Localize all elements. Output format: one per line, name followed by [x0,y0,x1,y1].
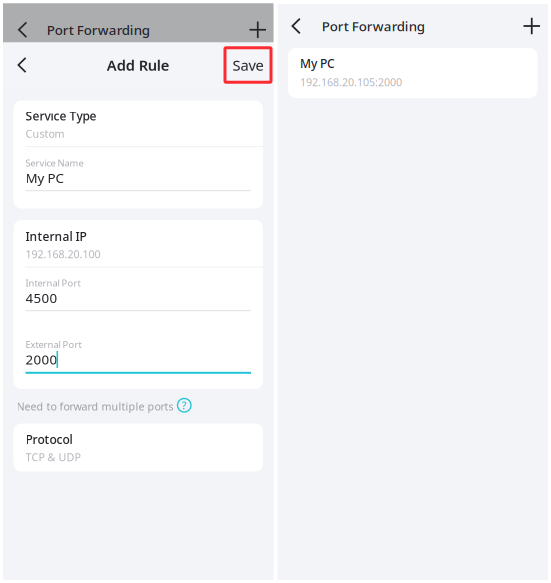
staticText: My PC [300,55,335,71]
button[interactable]: Back [3,16,47,44]
staticText: Port Forwarding [47,21,150,39]
staticText: Custom [25,126,64,141]
staticText: Service Name [25,157,83,169]
staticText: 4500 [25,289,57,307]
staticText: Internal Port [25,277,80,289]
staticText: Protocol [25,431,72,447]
button[interactable]: My PC [277,48,548,98]
staticText: Internal IP [25,228,86,244]
button[interactable]: Add rule [249,16,273,44]
button[interactable]: Add rule [523,4,548,48]
staticText: 192.168.20.105:2000 [300,75,402,89]
staticText: Service Type [25,108,96,124]
button[interactable]: Back [3,43,40,87]
staticText: ? [182,398,187,412]
staticText: TCP & UDP [25,450,80,464]
staticText: 2000 [25,351,57,368]
staticText: Add Rule [107,55,170,75]
staticText: My PC [25,169,63,187]
staticText: Need to forward multiple ports [16,399,173,413]
button[interactable]: Back [277,4,322,48]
button[interactable]: Save [225,48,271,82]
staticText: 192.168.20.100 [25,247,100,261]
staticText: Port Forwarding [322,17,425,35]
button[interactable]: Protocol [3,423,273,471]
button[interactable]: Help [173,397,197,415]
staticText: External Port [25,338,81,351]
staticText: Save [232,55,263,75]
